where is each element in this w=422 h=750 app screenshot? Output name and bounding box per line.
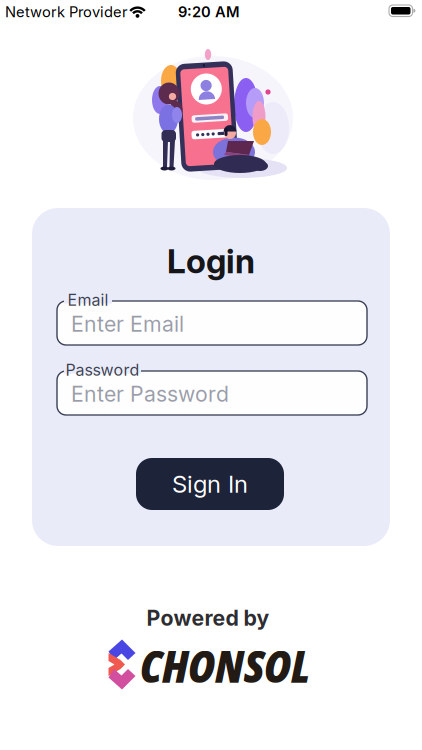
button[interactable]: Email — [57, 301, 367, 345]
staticText: Email — [67, 291, 108, 309]
staticText: Powered by — [146, 605, 269, 631]
staticText: Network Provider — [5, 3, 128, 21]
staticText: Password — [65, 361, 139, 379]
staticText: CHONSOL — [140, 636, 310, 695]
staticText: Enter Password — [71, 381, 229, 407]
button[interactable]: Sign In — [136, 458, 284, 510]
staticText: Enter Email — [71, 311, 184, 337]
staticText: Login — [167, 241, 255, 281]
staticText: Sign In — [172, 470, 248, 498]
staticText: 9:20 AM — [178, 3, 240, 21]
button[interactable]: Password — [57, 371, 367, 415]
